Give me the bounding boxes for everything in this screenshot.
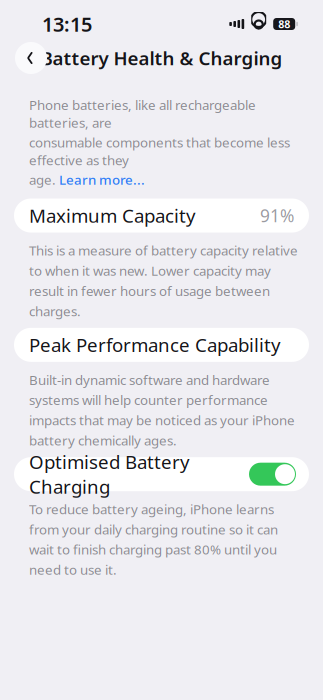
button[interactable]: Back — [15, 42, 47, 74]
staticText: Learn more... — [59, 171, 145, 188]
button[interactable]: Learn more... — [59, 171, 145, 188]
staticText: Phone batteries, like all rechargeable b… — [29, 96, 256, 131]
staticText: This is a measure of battery capacity re… — [29, 241, 298, 320]
button[interactable]: Optimised Battery Charging — [249, 463, 296, 486]
staticText: Built-in dynamic software and hardware s… — [29, 371, 295, 449]
staticText: 88 — [278, 17, 290, 31]
staticText: Peak Performance Capability — [29, 332, 281, 357]
staticText: Maximum Capacity — [29, 203, 196, 228]
staticText: 91% — [260, 204, 294, 227]
staticText: 13:15 — [42, 11, 92, 37]
staticText: consumable components that become less e… — [29, 133, 290, 169]
staticText: To reduce battery ageing, iPhone learns … — [29, 500, 278, 578]
staticText: Battery Health & Charging — [40, 46, 282, 70]
staticText: Optimised Battery Charging — [29, 449, 190, 499]
button[interactable]: Maximum Capacity — [14, 198, 309, 232]
button[interactable]: Peak Performance Capability — [14, 328, 309, 362]
staticText: age. — [29, 171, 59, 188]
